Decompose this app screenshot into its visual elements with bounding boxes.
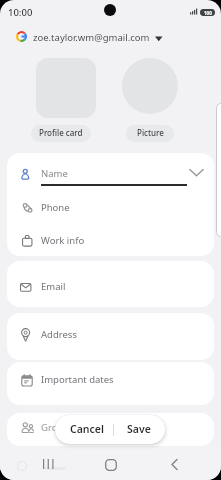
staticText: Profile card: [39, 127, 83, 138]
staticText: Picture: [137, 127, 164, 138]
staticText: Save: [127, 422, 151, 436]
button[interactable]: Cancel: [55, 415, 113, 444]
button[interactable]: Phone: [7, 190, 214, 223]
button[interactable]: [34, 452, 62, 478]
button[interactable]: Picture: [126, 125, 174, 142]
button[interactable]: Work info: [7, 223, 214, 256]
staticText: Groups: [41, 421, 74, 434]
staticText: Phone: [41, 201, 70, 214]
button[interactable]: Groups: [7, 413, 214, 446]
button[interactable]: zoe.taylor.wm@gmail.com: [10, 26, 168, 46]
button[interactable]: Profile card: [31, 125, 91, 142]
button[interactable]: Important dates: [7, 362, 214, 405]
staticText: Name: [41, 167, 68, 180]
staticText: Important dates: [41, 373, 114, 386]
button[interactable]: Save: [114, 415, 165, 444]
button[interactable]: Address: [7, 313, 214, 360]
button[interactable]: [122, 58, 178, 114]
staticText: Email: [41, 280, 66, 293]
staticText: Cancel: [70, 422, 104, 436]
button[interactable]: [160, 452, 188, 478]
staticText: zoe.taylor.wm@gmail.com: [33, 31, 150, 44]
button[interactable]: Email: [7, 261, 214, 307]
staticText: 100: [204, 10, 212, 16]
button[interactable]: Name: [7, 153, 214, 190]
button[interactable]: [97, 452, 125, 478]
staticText: Work info: [41, 234, 85, 247]
staticText: Address: [41, 328, 77, 341]
staticText: 10:00: [8, 6, 33, 19]
